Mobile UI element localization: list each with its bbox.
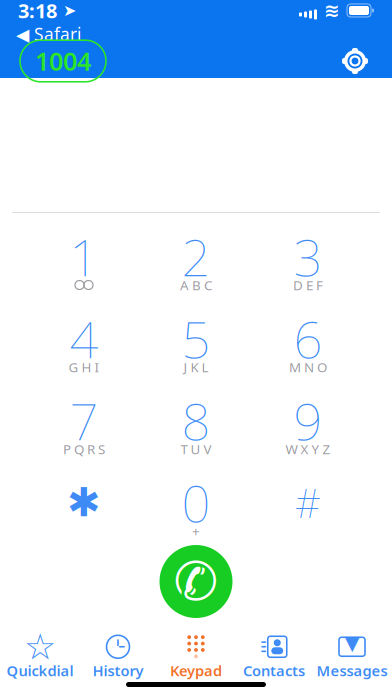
staticText: +	[192, 522, 200, 540]
button[interactable]: 8	[140, 391, 252, 461]
staticText: P Q R S	[63, 440, 105, 458]
staticText: ▼	[344, 631, 359, 654]
staticText: ☆	[24, 626, 56, 667]
button[interactable]: 4	[28, 309, 140, 379]
button[interactable]: Contacts	[235, 634, 313, 680]
button[interactable]: 1	[28, 227, 140, 297]
staticText: 0	[181, 469, 210, 536]
staticText: 1	[69, 223, 98, 290]
button[interactable]: 7	[28, 391, 140, 461]
button[interactable]: #	[252, 473, 364, 543]
staticText: T U V	[180, 440, 211, 458]
button[interactable]: 0	[140, 473, 252, 543]
staticText: A B C	[180, 276, 212, 294]
staticText: Messages	[316, 661, 387, 680]
staticText: 1004	[35, 44, 91, 78]
staticText: ✱	[67, 480, 101, 525]
staticText: History	[92, 661, 143, 680]
staticText: 4	[69, 305, 98, 372]
staticText: ◀ Safari	[16, 22, 81, 45]
button[interactable]: 2	[140, 227, 252, 297]
staticText: 9	[293, 387, 322, 454]
staticText: Quickdial	[6, 661, 73, 680]
staticText: ≋	[324, 0, 340, 21]
staticText: 5	[181, 305, 210, 372]
staticText: #	[295, 476, 321, 529]
button[interactable]: 1004	[20, 40, 106, 82]
staticText: Keypad	[170, 661, 222, 680]
staticText: D E F	[293, 276, 323, 294]
button[interactable]: 3	[252, 227, 364, 297]
button[interactable]: ✱	[28, 473, 140, 543]
staticText: ➤	[57, 1, 76, 20]
button[interactable]: Call	[159, 545, 232, 618]
button[interactable]: ☆	[1, 634, 79, 680]
staticText: W X Y Z	[285, 440, 330, 458]
staticText: ✆	[173, 551, 218, 612]
staticText: 6	[293, 305, 322, 372]
staticText: G H I	[68, 358, 99, 376]
staticText: 3:18	[18, 0, 57, 24]
button[interactable]: 5	[140, 309, 252, 379]
button[interactable]: History	[79, 634, 157, 680]
staticText: 3	[293, 223, 322, 290]
staticText: 2	[181, 223, 210, 290]
staticText: M N O	[289, 358, 327, 376]
button[interactable]: ▼	[313, 634, 391, 680]
button[interactable]: Settings	[338, 44, 372, 78]
staticText: 8	[181, 387, 210, 454]
staticText: J K L	[183, 358, 208, 376]
staticText: 7	[69, 387, 98, 454]
button[interactable]: 9	[252, 391, 364, 461]
staticText: Contacts	[243, 661, 305, 680]
button[interactable]: Keypad	[157, 634, 235, 680]
button[interactable]: 6	[252, 309, 364, 379]
